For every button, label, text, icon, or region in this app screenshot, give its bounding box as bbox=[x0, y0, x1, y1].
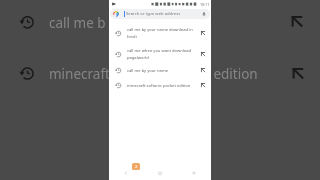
button[interactable]: call me by your name bbox=[109, 64, 211, 77]
staticText: minecraft bbox=[49, 65, 110, 83]
staticText: minecraft softonic pocket edition bbox=[127, 83, 198, 89]
button[interactable]: minecraft softonic pocket edition bbox=[109, 79, 211, 92]
button[interactable]: Search or type web address bbox=[110, 9, 210, 19]
button[interactable]: Insert suggestion bbox=[200, 67, 207, 74]
staticText: call me by your name bbox=[127, 68, 198, 74]
button[interactable]: Tabs bbox=[132, 163, 140, 170]
button[interactable]: Insert suggestion bbox=[200, 30, 207, 37]
staticText: t edition bbox=[205, 65, 258, 83]
button[interactable]: Voice search bbox=[201, 11, 207, 17]
button[interactable]: Back bbox=[109, 166, 143, 180]
button[interactable]: call me by your name download in hindi bbox=[109, 23, 211, 44]
staticText: call me when you want download pagalworl… bbox=[127, 48, 198, 61]
staticText: 2 bbox=[135, 164, 138, 169]
staticText: call me b bbox=[49, 14, 106, 32]
staticText: call me by your name download in hindi bbox=[127, 27, 198, 40]
button[interactable]: Insert suggestion bbox=[200, 82, 207, 89]
button[interactable]: Insert suggestion bbox=[200, 51, 207, 58]
button[interactable]: call me when you want download pagalworl… bbox=[109, 44, 211, 65]
button[interactable]: Home bbox=[143, 166, 177, 180]
button[interactable]: New tab bbox=[177, 166, 211, 180]
staticText: 10:11 bbox=[200, 2, 210, 7]
staticText: Search or type web address bbox=[126, 11, 181, 17]
